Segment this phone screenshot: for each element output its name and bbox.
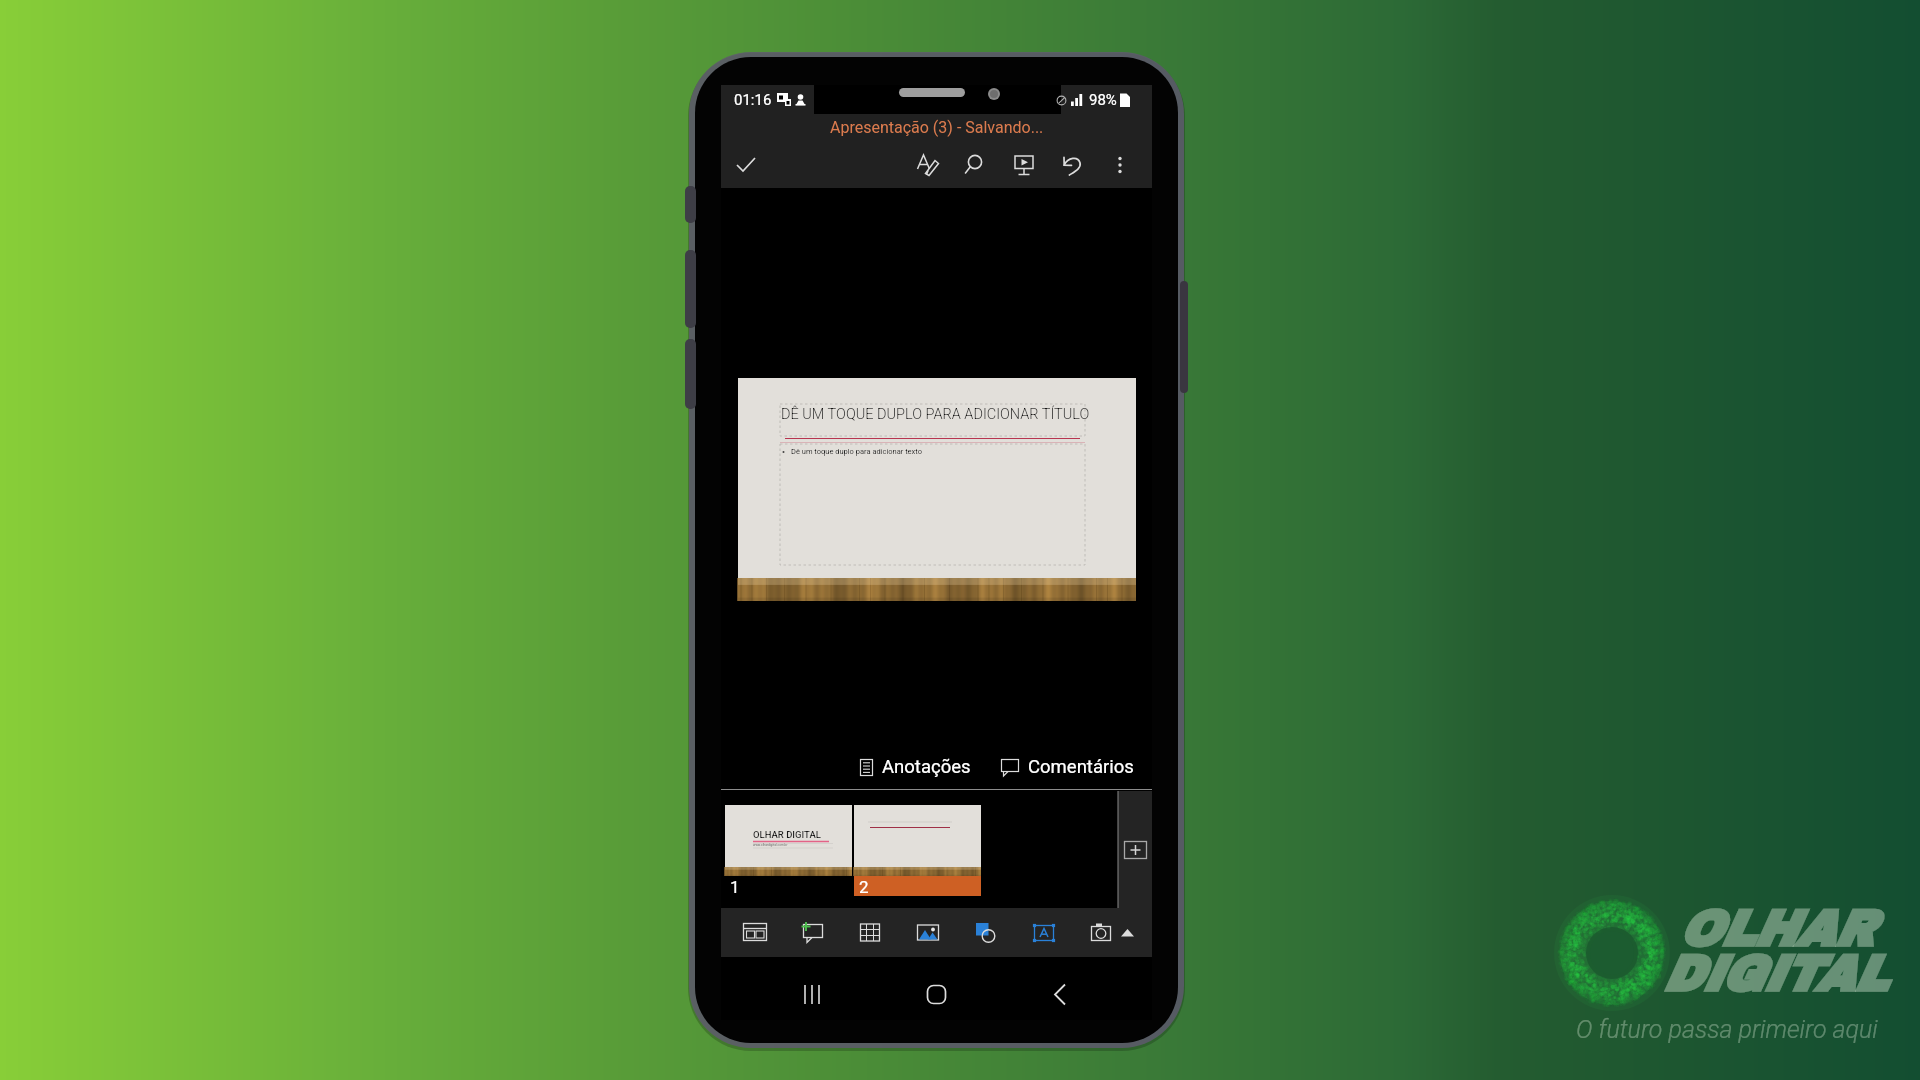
button[interactable]: Anotações <box>855 756 976 778</box>
staticText: Apresentação (3) - Salvando... <box>830 118 1044 137</box>
button[interactable]: Add slide <box>1118 791 1152 908</box>
button[interactable]: Shapes <box>957 908 1015 957</box>
staticText: DÊ UM TOQUE DUPLO PARA ADICIONAR TÍTULO <box>781 406 1090 423</box>
button[interactable]: Camera <box>1073 908 1131 957</box>
button[interactable]: Comentários <box>996 756 1139 778</box>
button[interactable]: Search <box>952 141 1000 188</box>
button[interactable]: 2 <box>854 805 981 896</box>
staticText: 01:16 <box>734 91 772 109</box>
button[interactable]: Layout <box>725 908 783 957</box>
button[interactable]: Done <box>721 141 771 188</box>
button[interactable]: Table <box>841 908 899 957</box>
button[interactable]: Back <box>998 968 1122 1020</box>
button[interactable]: Recents <box>751 968 874 1020</box>
button[interactable]: Insert picture <box>899 908 957 957</box>
staticText: Comentários <box>1028 756 1134 778</box>
staticText: 2 <box>859 877 869 897</box>
staticText: www.olhardigital.com.br <box>753 843 788 847</box>
button[interactable]: New comment <box>783 908 841 957</box>
staticText: 1 <box>730 877 740 897</box>
staticText: 98% <box>1089 91 1117 109</box>
staticText: Dê um toque duplo para adicionar texto <box>791 447 922 456</box>
button[interactable]: Undo <box>1048 141 1096 188</box>
button[interactable]: Home <box>874 968 998 1020</box>
staticText: O futuro passa primeiro aqui <box>1576 1015 1878 1044</box>
button[interactable]: Draw <box>904 141 952 188</box>
staticText: Anotações <box>882 756 971 778</box>
button[interactable]: More options <box>1096 141 1144 188</box>
button[interactable]: Expand toolbar <box>1113 908 1141 957</box>
button[interactable]: OLHAR DIGITAL <box>725 805 852 896</box>
button[interactable]: Text box <box>1015 908 1073 957</box>
button[interactable]: Present <box>1000 141 1048 188</box>
staticText: DIGITAL <box>1662 947 1887 1001</box>
staticText: OLHAR <box>1678 902 1873 956</box>
button[interactable]: DÊ UM TOQUE DUPLO PARA ADICIONAR TÍTULO <box>738 378 1136 601</box>
staticText: OLHAR DIGITAL <box>753 829 821 840</box>
